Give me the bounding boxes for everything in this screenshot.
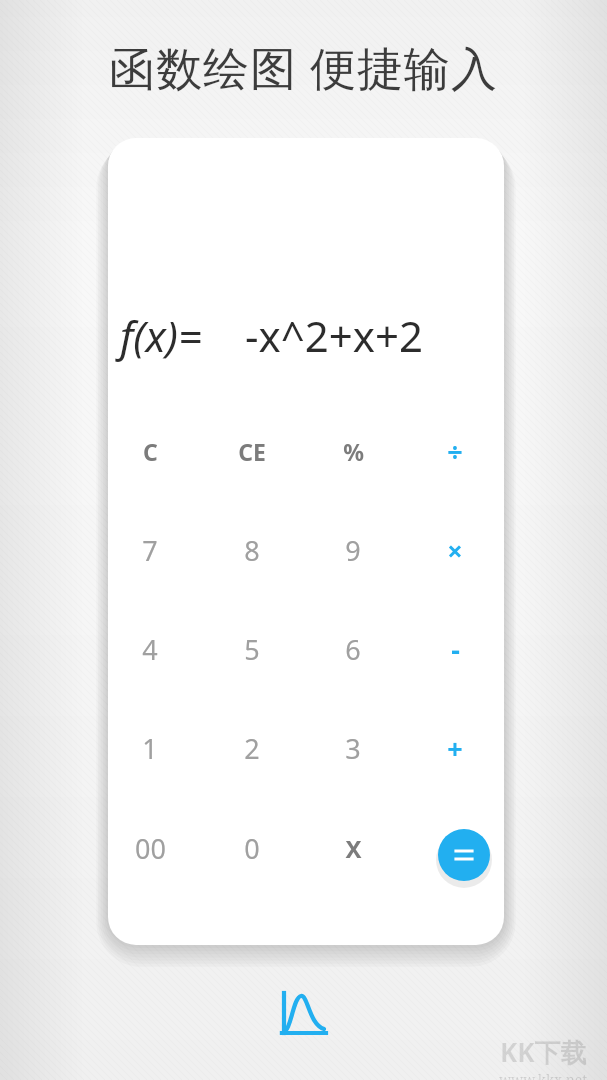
staticText: - xyxy=(451,631,460,668)
button[interactable]: + xyxy=(405,715,504,781)
button[interactable]: C xyxy=(108,418,200,484)
staticText: ÷ xyxy=(447,433,463,470)
staticText: -x^2+x+2 xyxy=(245,307,424,364)
staticText: X xyxy=(345,832,362,865)
staticText: KK下载 xyxy=(500,1034,587,1070)
staticText: 函数绘图 便捷输入 xyxy=(0,36,607,99)
button[interactable]: 5 xyxy=(202,616,302,682)
staticText: % xyxy=(343,436,364,467)
button[interactable]: - xyxy=(405,616,504,682)
button[interactable]: X xyxy=(303,815,403,881)
staticText: 5 xyxy=(244,631,260,668)
button[interactable]: % xyxy=(303,418,403,484)
staticText: 4 xyxy=(142,631,158,668)
button[interactable]: 2 xyxy=(202,715,302,781)
staticText: 00 xyxy=(135,830,166,867)
staticText: 2 xyxy=(244,730,260,767)
staticText: 3 xyxy=(345,730,361,767)
button[interactable]: 00 xyxy=(108,815,200,881)
staticText: f(x)= xyxy=(120,307,203,364)
button[interactable]: 0 xyxy=(202,815,302,881)
staticText: 9 xyxy=(345,532,361,569)
button[interactable]: 7 xyxy=(108,517,200,583)
button[interactable]: Equals xyxy=(438,829,490,881)
staticText: 8 xyxy=(244,532,260,569)
staticText: C xyxy=(143,436,158,467)
staticText: × xyxy=(447,532,463,569)
staticText: 7 xyxy=(142,532,158,569)
staticText: www.kkx.net xyxy=(499,1070,588,1080)
button[interactable]: 9 xyxy=(303,517,403,583)
button[interactable]: 6 xyxy=(303,616,403,682)
button[interactable]: × xyxy=(405,517,504,583)
staticText: 1 xyxy=(142,730,158,767)
staticText: + xyxy=(447,730,463,767)
staticText: 6 xyxy=(345,631,361,668)
staticText: CE xyxy=(238,436,266,467)
button[interactable]: CE xyxy=(202,418,302,484)
button[interactable]: 3 xyxy=(303,715,403,781)
button[interactable]: Function graph xyxy=(281,991,327,1037)
staticText: 0 xyxy=(244,830,260,867)
button[interactable]: 1 xyxy=(108,715,200,781)
button[interactable]: ÷ xyxy=(405,418,504,484)
button[interactable]: 8 xyxy=(202,517,302,583)
button[interactable]: 4 xyxy=(108,616,200,682)
